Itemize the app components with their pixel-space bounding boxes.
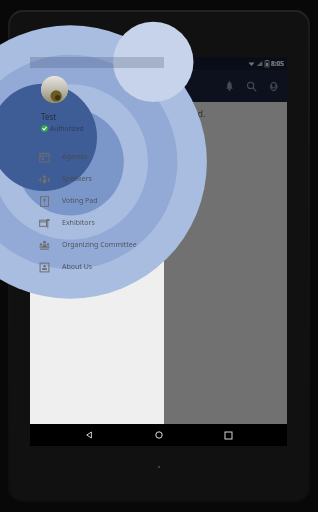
button[interactable]: Attachment (262, 75, 284, 97)
staticText: Speakers (62, 174, 92, 184)
button[interactable]: About Us (30, 256, 164, 278)
button[interactable]: Organizing Committee (30, 234, 164, 256)
button[interactable]: Notifications (218, 75, 240, 97)
staticText: Test (41, 111, 57, 122)
button[interactable]: Voting Pad (30, 190, 164, 212)
button[interactable]: Speakers (30, 168, 164, 190)
staticText: About Us (62, 262, 93, 272)
staticText: No Connection Found. (111, 107, 206, 119)
button[interactable]: Search (240, 75, 262, 97)
staticText: 8:05 (271, 59, 284, 68)
button[interactable]: Back (79, 425, 99, 445)
button[interactable]: Recents (218, 425, 238, 445)
staticText: Agenda (62, 152, 88, 162)
button[interactable]: Home (149, 425, 169, 445)
staticText: Exhibitors (62, 218, 95, 228)
staticText: Tap to retry (134, 123, 183, 135)
staticText: Voting Pad (62, 196, 98, 206)
staticText: Authorized (50, 124, 84, 133)
button[interactable]: Agenda (30, 146, 164, 168)
button[interactable]: Exhibitors (30, 212, 164, 234)
button[interactable] (30, 57, 287, 424)
staticText: Organizing Committee (62, 240, 137, 250)
